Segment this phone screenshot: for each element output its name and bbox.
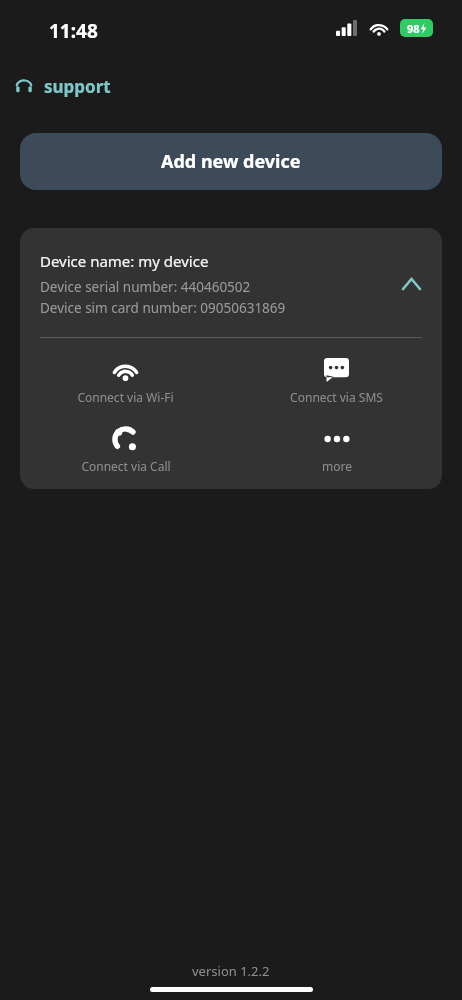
button[interactable]: more [231,421,442,480]
staticText: more [322,458,352,474]
staticText: support [44,75,111,98]
staticText: 98 [407,21,420,36]
button[interactable]: Connect via Wi-Fi [20,352,231,411]
button[interactable]: Device name: my device [20,228,442,328]
button[interactable]: Connect via Call [20,421,231,480]
staticText: Device name: my device [40,251,209,271]
button[interactable]: Connect via SMS [231,352,442,411]
staticText: Connect via Wi-Fi [77,389,174,405]
staticText: Connect via Call [81,458,171,474]
staticText: version 1.2.2 [192,962,270,980]
staticText: Device serial number: 440460502 [40,278,251,296]
button[interactable]: Collapse [395,268,427,300]
staticText: 11:48 [49,18,98,44]
staticText: Connect via SMS [290,389,383,405]
button[interactable]: support [8,70,117,103]
button[interactable]: Add new device [20,133,442,190]
staticText: Add new device [161,149,301,174]
staticText: Device sim card number: 09050631869 [40,299,286,317]
